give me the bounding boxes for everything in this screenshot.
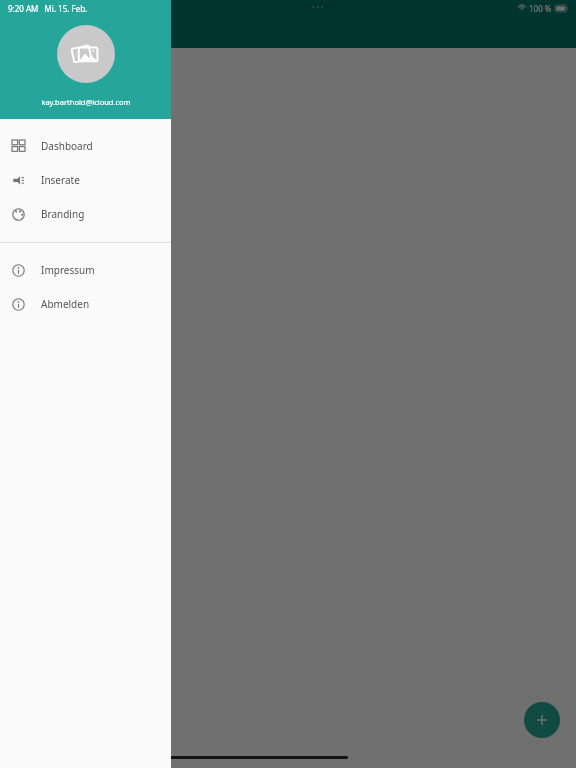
button[interactable] [0, 0, 576, 768]
staticText: • • • [312, 3, 324, 13]
button[interactable]: Dashboard [0, 129, 171, 163]
button[interactable]: Inserate [0, 163, 171, 197]
staticText: Impressum [41, 263, 95, 277]
button[interactable]: Abmelden [0, 287, 171, 321]
button[interactable]: Branding [0, 197, 171, 231]
button[interactable]: Hinzufügen [524, 702, 560, 738]
staticText: 100 % [529, 3, 552, 14]
button[interactable]: Impressum [0, 253, 171, 287]
staticText: Abmelden [41, 297, 90, 311]
staticText: Branding [41, 207, 85, 221]
staticText: Inserate [95, 22, 147, 40]
staticText: Dashboard [41, 139, 93, 153]
staticText: 9:20 AM Mi. 15. Feb. [8, 3, 88, 14]
staticText: Inserate [41, 173, 80, 187]
staticText: kay.barthold@icloud.com [41, 97, 131, 107]
